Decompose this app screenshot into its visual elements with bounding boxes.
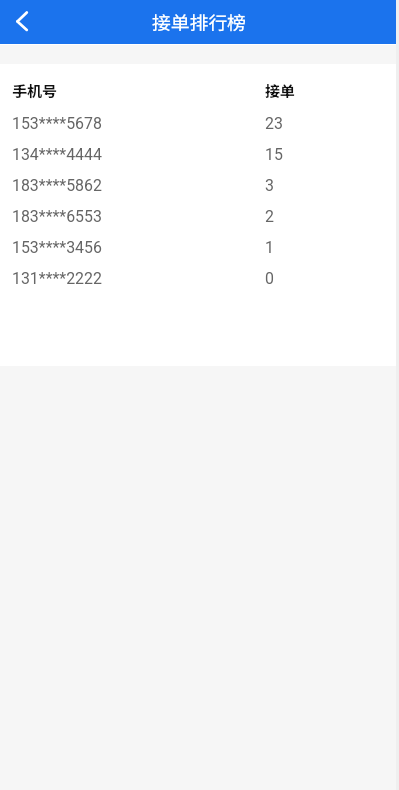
staticText: 153****3456 [12, 238, 265, 257]
staticText: 183****5862 [12, 176, 265, 195]
staticText: 153****5678 [12, 114, 265, 133]
button[interactable]: 131****2222 [0, 260, 396, 291]
staticText: 接单 [265, 80, 296, 102]
staticText: 手机号 [12, 80, 265, 102]
staticText: 131****2222 [12, 269, 265, 288]
staticText: 1 [265, 238, 274, 257]
button[interactable]: 153****3456 [0, 229, 396, 260]
button[interactable]: 183****5862 [0, 167, 396, 198]
button[interactable]: 153****5678 [0, 105, 396, 136]
staticText: 15 [265, 145, 283, 164]
staticText: 2 [265, 207, 274, 226]
staticText: 0 [265, 269, 274, 288]
staticText: 接单排行榜 [152, 8, 246, 35]
staticText: 183****6553 [12, 207, 265, 226]
button[interactable]: Back [4, 4, 40, 40]
staticText: 23 [265, 114, 283, 133]
staticText: 134****4444 [12, 145, 265, 164]
button[interactable]: 183****6553 [0, 198, 396, 229]
button[interactable]: 134****4444 [0, 136, 396, 167]
staticText: 3 [265, 176, 274, 195]
